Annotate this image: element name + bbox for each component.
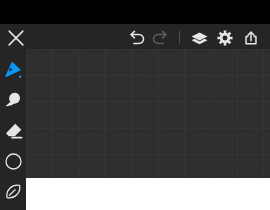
button[interactable]: Brush xyxy=(0,54,25,84)
button[interactable]: Close xyxy=(6,27,26,49)
button[interactable]: Eraser xyxy=(0,115,26,145)
button[interactable]: Smudge xyxy=(0,84,26,114)
button[interactable]: Layers xyxy=(189,27,210,50)
button[interactable]: Share xyxy=(241,27,261,49)
button[interactable]: Lasso xyxy=(0,176,26,206)
button[interactable]: Shape xyxy=(0,146,26,176)
button[interactable]: Undo xyxy=(127,26,148,49)
button[interactable]: Redo xyxy=(149,26,170,49)
button[interactable]: Settings xyxy=(215,27,235,49)
